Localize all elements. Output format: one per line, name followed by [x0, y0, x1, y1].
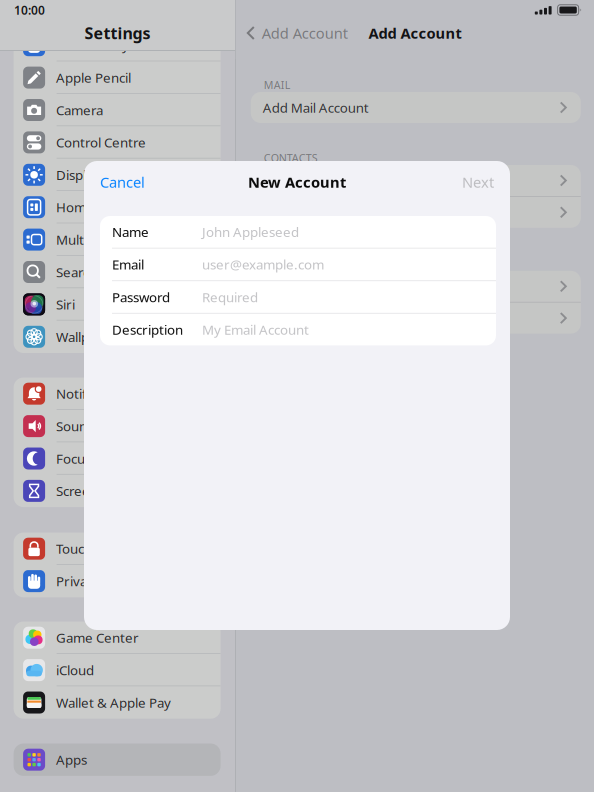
staticText: Touch ID & Passcode	[56, 540, 183, 557]
button[interactable]: Search	[14, 256, 221, 288]
staticText: Screen Time	[56, 482, 131, 500]
button[interactable]: Next	[462, 162, 510, 202]
staticText: Camera	[56, 101, 103, 119]
staticText: CONTACTS	[264, 151, 318, 165]
button[interactable]: Add Account	[236, 14, 348, 52]
button[interactable]: Account option	[251, 165, 581, 196]
staticText: Email	[112, 256, 144, 273]
staticText: New Account	[248, 172, 346, 192]
staticText: Focus	[56, 450, 91, 467]
staticText: Cancel	[100, 172, 145, 192]
staticText: Game Center	[56, 629, 139, 646]
button[interactable]: Notifications	[14, 377, 221, 410]
button[interactable]: Account option	[251, 271, 581, 302]
staticText: Control Centre	[56, 133, 146, 151]
staticText: Add Mail Account	[263, 99, 369, 116]
button[interactable]: Game Center	[14, 621, 221, 654]
staticText: Wallet & Apple Pay	[56, 694, 171, 711]
staticText: Wallpaper	[56, 328, 118, 346]
button[interactable]: Multitasking & Gestures	[14, 223, 221, 256]
staticText: Multitasking & Gestures	[56, 231, 203, 248]
staticText: Description	[112, 321, 183, 338]
staticText: Search	[56, 263, 97, 281]
staticText: Home Screen	[56, 198, 139, 216]
button[interactable]: Wallet & Apple Pay	[14, 686, 221, 719]
staticText: Notifications	[56, 385, 133, 402]
staticText: MAIL	[264, 78, 291, 92]
button[interactable]: Wallpaper	[14, 321, 221, 353]
button[interactable]: Touch ID & Passcode	[14, 532, 221, 565]
button[interactable]: Control Centre	[14, 126, 221, 159]
button[interactable]: Display & Brightness	[14, 159, 221, 191]
staticText: user@example.com	[202, 256, 324, 273]
staticText: Privacy & Security	[56, 572, 166, 590]
staticText: 10:00	[14, 2, 45, 18]
staticText: Add Account	[368, 23, 461, 43]
button[interactable]: Sounds	[14, 410, 221, 442]
staticText: Settings	[84, 22, 150, 44]
button[interactable]: Privacy & Security	[14, 565, 221, 597]
button[interactable]: Home Screen	[14, 191, 221, 223]
staticText: My Email Account	[202, 321, 309, 338]
button[interactable]: Add Mail Account	[251, 92, 581, 123]
button[interactable]: Siri	[14, 288, 221, 321]
button[interactable]: Accessibility	[14, 29, 221, 61]
button[interactable]: Camera	[14, 94, 221, 126]
staticText: Sounds	[56, 417, 101, 435]
staticText: Name	[112, 223, 149, 241]
staticText: Add Account	[262, 23, 348, 43]
staticText: Next	[462, 172, 494, 192]
staticText: Password	[112, 288, 170, 306]
staticText: Apple Pencil	[56, 69, 131, 86]
staticText: John Appleseed	[202, 223, 299, 241]
staticText: Required	[202, 288, 258, 306]
staticText: Display & Brightness	[56, 166, 183, 184]
staticText: iCloud	[56, 661, 94, 679]
button[interactable]: Account option	[251, 197, 581, 228]
button[interactable]: Cancel	[84, 162, 145, 202]
button[interactable]: Screen Time	[14, 475, 221, 507]
button[interactable]: iCloud	[14, 654, 221, 686]
staticText: Accessibility	[56, 36, 129, 54]
button[interactable]: Account option	[251, 303, 581, 334]
staticText: Siri	[56, 295, 75, 313]
button[interactable]: Apps	[14, 743, 221, 776]
staticText: Apps	[56, 751, 87, 768]
button[interactable]: Apple Pencil	[14, 61, 221, 94]
button[interactable]: Focus	[14, 442, 221, 475]
